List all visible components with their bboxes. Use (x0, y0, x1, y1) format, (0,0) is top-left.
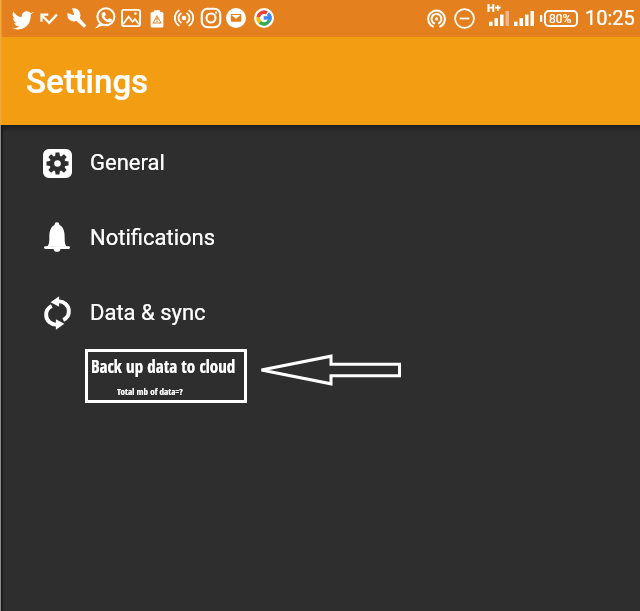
staticText: Settings (26, 62, 149, 101)
button[interactable]: Data & sync (0, 275, 640, 350)
button[interactable]: Back up data to cloud (88, 352, 244, 400)
other: Pointer arrow (260, 354, 401, 386)
staticText: 80% (549, 12, 572, 26)
staticText: Back up data to cloud (91, 355, 236, 378)
button[interactable]: Notifications (0, 200, 640, 275)
staticText: Total mb of data=? (117, 385, 183, 397)
staticText: 10:25 (585, 6, 635, 29)
staticText: H+ (487, 2, 501, 15)
button[interactable]: General (0, 125, 640, 200)
staticText: Notifications (90, 225, 216, 251)
staticText: Data & sync (90, 300, 206, 326)
staticText: General (90, 150, 165, 176)
